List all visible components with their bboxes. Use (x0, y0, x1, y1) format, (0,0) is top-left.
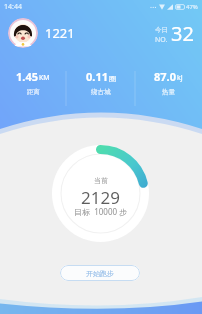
staticText: 2129 (81, 186, 120, 209)
button[interactable]: Profile (8, 18, 38, 48)
button[interactable]: 开始跑步 (60, 265, 140, 281)
staticText: 热量 (162, 88, 175, 96)
staticText: 14:44 (4, 2, 22, 12)
staticText: 47% (186, 3, 198, 11)
staticText: 目标 10000 步 (74, 206, 128, 217)
staticText: 87.0 (154, 69, 176, 84)
staticText: 今日 (155, 26, 168, 34)
staticText: 圈 (109, 74, 116, 83)
staticText: 开始跑步 (86, 269, 114, 278)
staticText: NO. (155, 35, 168, 45)
staticText: 1221 (45, 24, 75, 42)
staticText: kJ (177, 73, 183, 83)
staticText: 1.45 (16, 69, 38, 84)
staticText: 绕古城 (91, 88, 111, 96)
staticText: 距离 (27, 88, 40, 96)
staticText: KM (39, 73, 50, 83)
staticText: 32 (171, 20, 194, 47)
staticText: 0.11 (86, 69, 108, 84)
staticText: 当前 (94, 176, 108, 185)
